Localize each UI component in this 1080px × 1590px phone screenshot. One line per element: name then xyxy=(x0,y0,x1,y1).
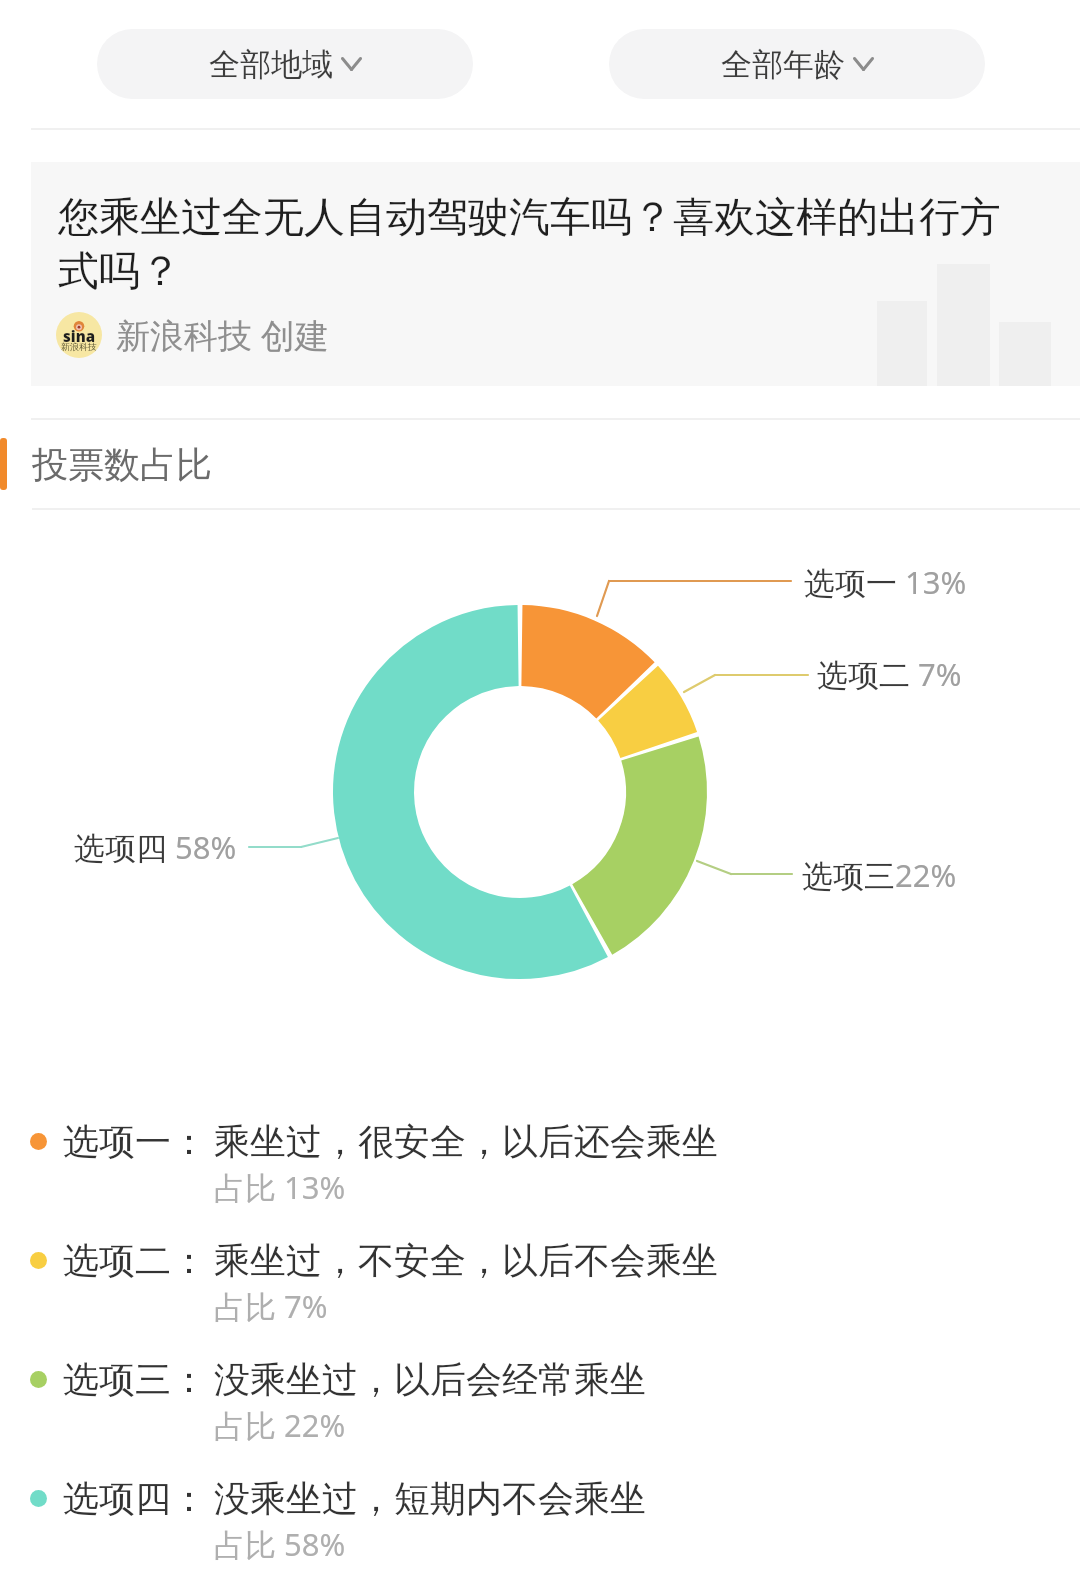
button[interactable]: 选项四： xyxy=(0,1458,1080,1577)
staticText: 选项四： xyxy=(63,1476,207,1521)
staticText: 13% xyxy=(897,561,967,603)
staticText: 没乘坐过，以后会经常乘坐 xyxy=(214,1357,646,1402)
staticText: 乘坐过，不安全，以后不会乘坐 xyxy=(214,1238,718,1283)
staticText: 选项三 xyxy=(802,857,895,896)
staticText: 选项一 xyxy=(804,564,897,603)
staticText: 占比 13% xyxy=(214,1166,346,1208)
staticText: 占比 58% xyxy=(214,1523,346,1565)
staticText: 22% xyxy=(895,854,957,896)
staticText: 全部年龄 xyxy=(721,45,845,84)
staticText: 选项四 xyxy=(74,829,167,868)
button[interactable]: 全部年龄 xyxy=(609,29,985,99)
button[interactable]: 选项二： xyxy=(0,1220,1080,1339)
button[interactable]: 全部地域 xyxy=(97,29,473,99)
button[interactable]: 选项三 xyxy=(802,854,957,896)
staticText: 占比 22% xyxy=(214,1404,346,1446)
button[interactable]: 选项二 xyxy=(817,653,962,695)
staticText: 选项二 xyxy=(817,656,910,695)
staticText: 乘坐过，很安全，以后还会乘坐 xyxy=(214,1119,718,1164)
staticText: 58% xyxy=(167,826,237,868)
staticText: 选项二： xyxy=(63,1238,207,1283)
staticText: 没乘坐过，短期内不会乘坐 xyxy=(214,1476,646,1521)
button[interactable]: 选项一 xyxy=(804,561,967,603)
staticText: 选项一： xyxy=(63,1119,207,1164)
staticText: 新浪科技 xyxy=(61,341,97,352)
staticText: 占比 7% xyxy=(214,1285,328,1327)
button[interactable]: 选项一： xyxy=(0,1101,1080,1220)
staticText: 选项三： xyxy=(63,1357,207,1402)
staticText: 新浪科技 创建 xyxy=(116,312,329,358)
staticText: 您乘坐过全无人自动驾驶汽车吗？喜欢这样的出行方式吗？ xyxy=(58,192,1040,297)
staticText: sina xyxy=(63,326,96,346)
button[interactable]: 您乘坐过全无人自动驾驶汽车吗？喜欢这样的出行方式吗？ xyxy=(31,162,1080,386)
button[interactable]: 选项四 xyxy=(74,826,237,868)
staticText: 7% xyxy=(910,653,962,695)
other: 投票结果环形图 xyxy=(0,510,1080,1080)
button[interactable]: 选项三： xyxy=(0,1339,1080,1458)
staticText: 投票数占比 xyxy=(32,442,212,487)
staticText: 全部地域 xyxy=(209,45,333,84)
